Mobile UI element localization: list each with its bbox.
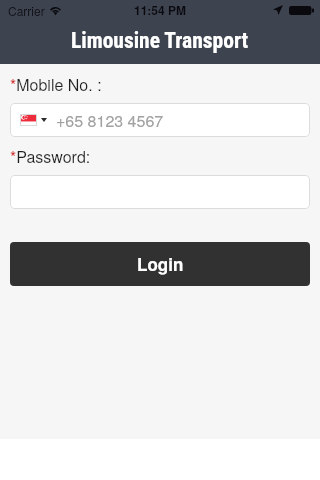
button[interactable]: Select country code xyxy=(20,114,47,126)
staticText: Login xyxy=(137,252,184,276)
button[interactable]: Password xyxy=(10,175,310,209)
staticText: Limousine Transport xyxy=(71,28,249,53)
staticText: 11:54 PM xyxy=(134,1,187,18)
button[interactable]: Login xyxy=(10,242,310,286)
staticText: +65 8123 4567 xyxy=(56,109,164,132)
staticText: *Password: xyxy=(10,145,91,168)
staticText: Carrier xyxy=(8,2,45,19)
staticText: *Mobile No. : xyxy=(10,73,102,96)
